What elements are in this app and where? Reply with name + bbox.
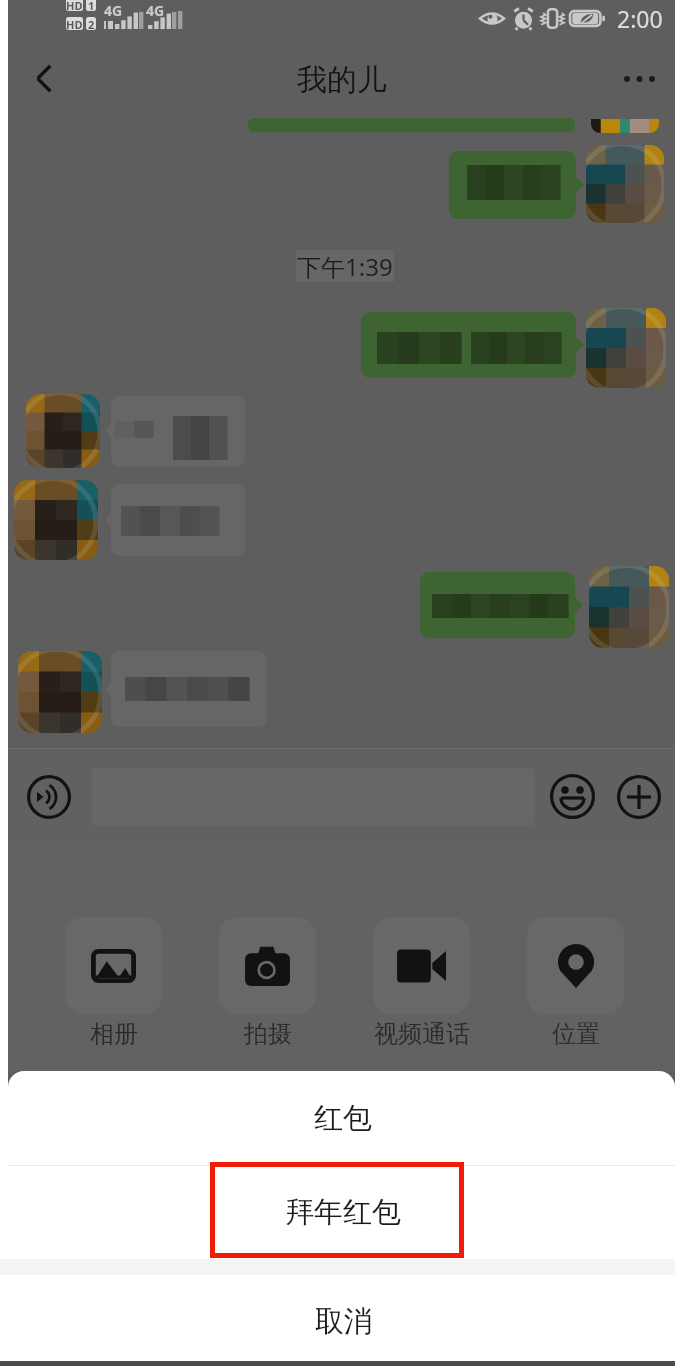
button[interactable]: Emoji xyxy=(543,748,601,845)
button[interactable] xyxy=(449,151,576,219)
staticText: 下午1:39 xyxy=(297,250,393,282)
staticText: HD xyxy=(66,17,83,30)
button[interactable]: More functions xyxy=(610,748,668,845)
button[interactable] xyxy=(111,484,245,556)
staticText: 取消 xyxy=(315,1303,373,1340)
staticText: 位置 xyxy=(552,1019,600,1049)
staticText: 我的儿 xyxy=(297,61,387,99)
staticText: 拜年红包 xyxy=(285,1194,401,1231)
button[interactable]: 相册 xyxy=(65,917,162,1049)
button[interactable] xyxy=(361,312,576,378)
button[interactable]: Back xyxy=(12,45,76,112)
button[interactable]: 取消 xyxy=(0,1275,675,1361)
button[interactable]: Voice input xyxy=(10,748,88,845)
button[interactable]: 红包 xyxy=(8,1071,675,1165)
button[interactable]: More options xyxy=(604,45,674,112)
staticText: 4G xyxy=(104,1,123,20)
button[interactable] xyxy=(420,572,575,638)
button[interactable]: 位置 xyxy=(527,917,624,1049)
staticText: 视频通话 xyxy=(374,1019,470,1049)
button[interactable]: 视频通话 xyxy=(373,917,470,1049)
staticText: 2 xyxy=(88,17,95,30)
staticText: 1 xyxy=(88,0,95,11)
button[interactable]: 拜年红包 xyxy=(8,1166,675,1259)
button[interactable]: 拍摄 xyxy=(219,917,316,1049)
staticText: 相册 xyxy=(90,1019,138,1049)
staticText: HD xyxy=(66,0,83,11)
staticText: 拍摄 xyxy=(244,1019,292,1049)
button[interactable] xyxy=(111,651,267,727)
staticText: 红包 xyxy=(314,1100,372,1137)
staticText: 2:00 xyxy=(617,3,663,34)
staticText: 4G xyxy=(146,1,165,20)
button[interactable] xyxy=(111,396,245,467)
